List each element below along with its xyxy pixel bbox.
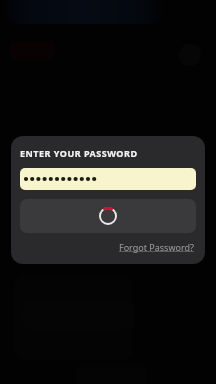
- staticText: Forgot Password?: [119, 241, 194, 253]
- button[interactable]: Forgot Password?: [117, 239, 196, 255]
- staticText: ENTER YOUR PASSWORD: [20, 147, 138, 159]
- button[interactable]: Submit password, loading: [20, 199, 196, 233]
- button[interactable]: Password field: [20, 168, 196, 190]
